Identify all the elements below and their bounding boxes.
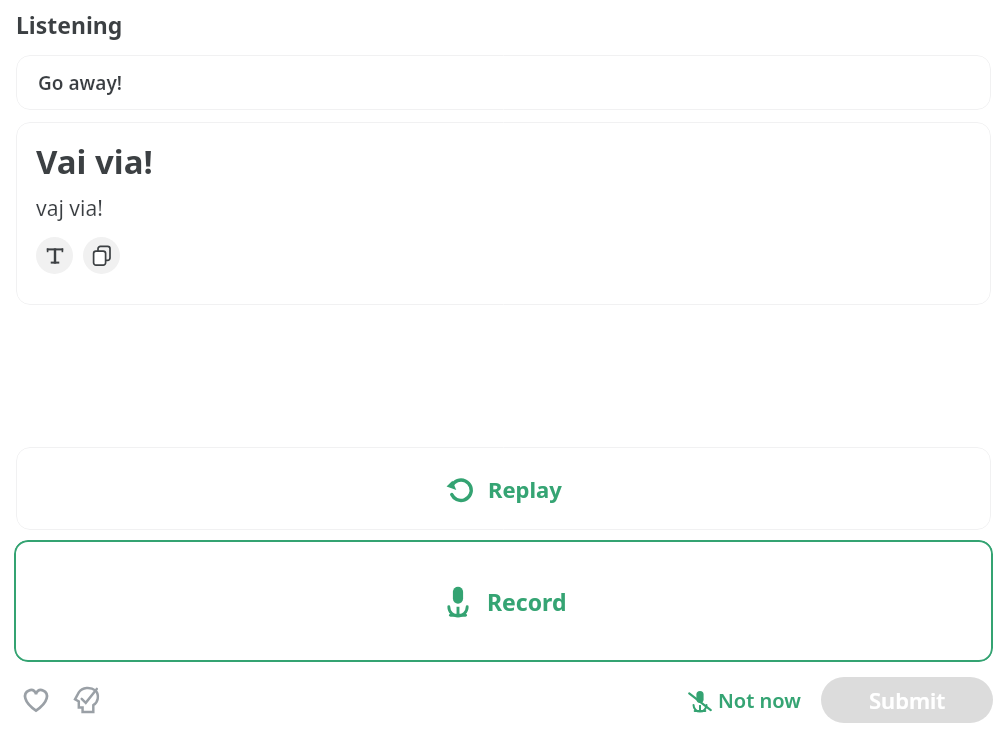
staticText: Vai via! — [36, 139, 153, 184]
staticText: vaj via! — [36, 194, 103, 223]
button[interactable]: Favorite — [16, 680, 56, 720]
button[interactable]: Submit — [821, 677, 993, 723]
staticText: Not now — [718, 687, 801, 714]
button[interactable]: Copy — [83, 237, 120, 274]
button[interactable]: Not now — [684, 681, 805, 720]
staticText: Go away! — [38, 70, 123, 96]
button[interactable]: Show text — [36, 237, 73, 274]
staticText: Listening — [16, 9, 123, 40]
staticText: Submit — [869, 685, 946, 715]
button[interactable]: Replay — [16, 447, 991, 530]
staticText: Record — [487, 586, 567, 617]
button[interactable]: Record — [14, 540, 993, 662]
button[interactable]: Go away! — [16, 55, 991, 110]
staticText: Replay — [488, 474, 562, 504]
button[interactable]: Mark as learned — [67, 680, 107, 720]
